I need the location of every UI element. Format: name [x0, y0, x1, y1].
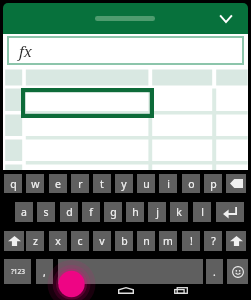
button[interactable] — [3, 3, 248, 34]
button[interactable]: , — [36, 259, 53, 284]
staticText: n — [143, 234, 150, 248]
staticText: i — [167, 177, 170, 191]
button[interactable]: j — [148, 202, 166, 222]
button[interactable]: Shift — [226, 231, 246, 251]
staticText: c — [77, 234, 83, 248]
button[interactable]: p — [204, 174, 222, 193]
button[interactable]: r — [71, 174, 89, 193]
other: Selected cell — [21, 88, 154, 118]
staticText: y — [121, 177, 127, 191]
staticText: o — [188, 177, 195, 191]
staticText: p — [210, 177, 217, 191]
button[interactable]: Recents — [169, 282, 193, 298]
button[interactable]: o — [182, 174, 200, 193]
button[interactable]: ? — [204, 231, 222, 251]
button[interactable]: g — [104, 202, 122, 222]
staticText: e — [55, 177, 61, 191]
button[interactable]: Home — [114, 282, 138, 298]
button[interactable]: Space — [58, 259, 203, 284]
staticText: q — [10, 177, 17, 191]
staticText: fx — [19, 41, 32, 61]
button[interactable]: x — [49, 231, 67, 251]
button[interactable]: i — [159, 174, 177, 193]
staticText: h — [132, 205, 139, 219]
button[interactable]: . — [206, 259, 223, 284]
button[interactable]: Shift — [4, 231, 24, 251]
button[interactable]: v — [93, 231, 111, 251]
button[interactable]: f — [82, 202, 100, 222]
button[interactable]: ?123 — [4, 259, 31, 284]
staticText: x — [55, 234, 61, 248]
staticText: j — [156, 205, 159, 219]
button[interactable]: s — [37, 202, 55, 222]
button[interactable]: n — [137, 231, 155, 251]
staticText: u — [143, 177, 150, 191]
button[interactable]: t — [93, 174, 111, 193]
staticText: , — [43, 265, 46, 279]
staticText: d — [66, 205, 73, 219]
staticText: f — [89, 205, 93, 219]
button[interactable]: Enter — [216, 202, 244, 222]
staticText: s — [43, 205, 49, 219]
staticText: v — [99, 234, 105, 248]
button[interactable]: q — [4, 174, 22, 193]
staticText: ! — [190, 234, 193, 248]
staticText: . — [213, 265, 216, 279]
button[interactable]: Backspace — [226, 174, 246, 193]
button[interactable]: ! — [182, 231, 200, 251]
button[interactable]: e — [49, 174, 67, 193]
button[interactable]: Back — [60, 282, 84, 298]
staticText: r — [78, 177, 83, 191]
staticText: b — [121, 234, 128, 248]
staticText: g — [110, 205, 117, 219]
staticText: t — [100, 177, 104, 191]
button[interactable]: d — [60, 202, 78, 222]
staticText: ?123 — [11, 267, 25, 276]
button[interactable]: h — [126, 202, 144, 222]
button[interactable]: fx — [7, 36, 244, 65]
button[interactable]: Collapse — [214, 6, 238, 30]
button[interactable]: l — [193, 202, 211, 222]
button[interactable]: w — [26, 174, 44, 193]
button[interactable]: y — [115, 174, 133, 193]
staticText: w — [31, 177, 40, 191]
staticText: k — [176, 205, 182, 219]
button[interactable]: z — [26, 231, 44, 251]
button[interactable]: m — [159, 231, 177, 251]
button[interactable]: b — [115, 231, 133, 251]
button[interactable]: a — [15, 202, 33, 222]
staticText: l — [201, 205, 204, 219]
staticText: ? — [211, 234, 216, 248]
staticText: a — [21, 205, 27, 219]
button[interactable]: Emoji — [227, 259, 248, 284]
staticText: m — [163, 234, 173, 248]
button[interactable]: k — [170, 202, 188, 222]
button[interactable]: u — [137, 174, 155, 193]
button[interactable]: c — [71, 231, 89, 251]
staticText: z — [33, 234, 38, 248]
